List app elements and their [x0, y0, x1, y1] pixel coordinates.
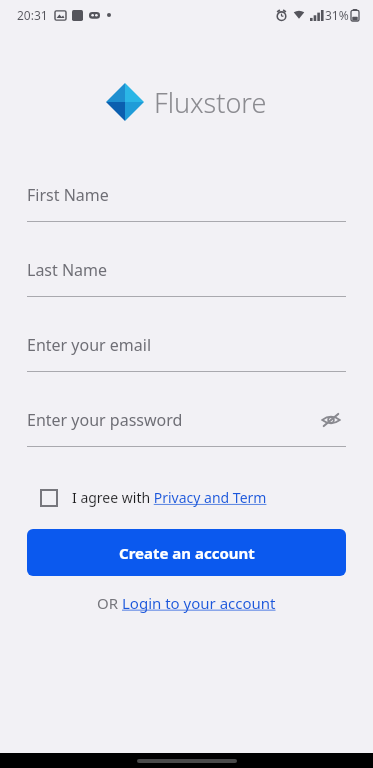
button[interactable]: Agree checkbox — [27, 488, 346, 507]
button[interactable]: Last Name — [27, 243, 346, 296]
button[interactable]: Agree checkbox — [40, 489, 58, 507]
staticText: Enter your password — [27, 409, 183, 431]
button[interactable]: Enter your email — [27, 318, 346, 371]
button[interactable]: Create an account — [27, 529, 346, 576]
staticText: Login to your account — [122, 593, 276, 613]
button[interactable]: Login to your account — [122, 593, 276, 613]
button[interactable]: Enter your password — [27, 393, 346, 446]
staticText: 31% — [325, 7, 349, 23]
staticText: I agree with Privacy and Term — [72, 488, 267, 507]
staticText: First Name — [27, 184, 109, 206]
button[interactable]: Show password — [316, 405, 346, 435]
staticText: OR — [97, 593, 122, 613]
staticText: Last Name — [27, 259, 108, 281]
staticText: 20:31 — [17, 7, 48, 23]
staticText: Create an account — [119, 543, 255, 563]
button[interactable]: First Name — [27, 168, 346, 221]
staticText: Fluxstore — [154, 84, 267, 121]
staticText: Enter your email — [27, 334, 152, 356]
